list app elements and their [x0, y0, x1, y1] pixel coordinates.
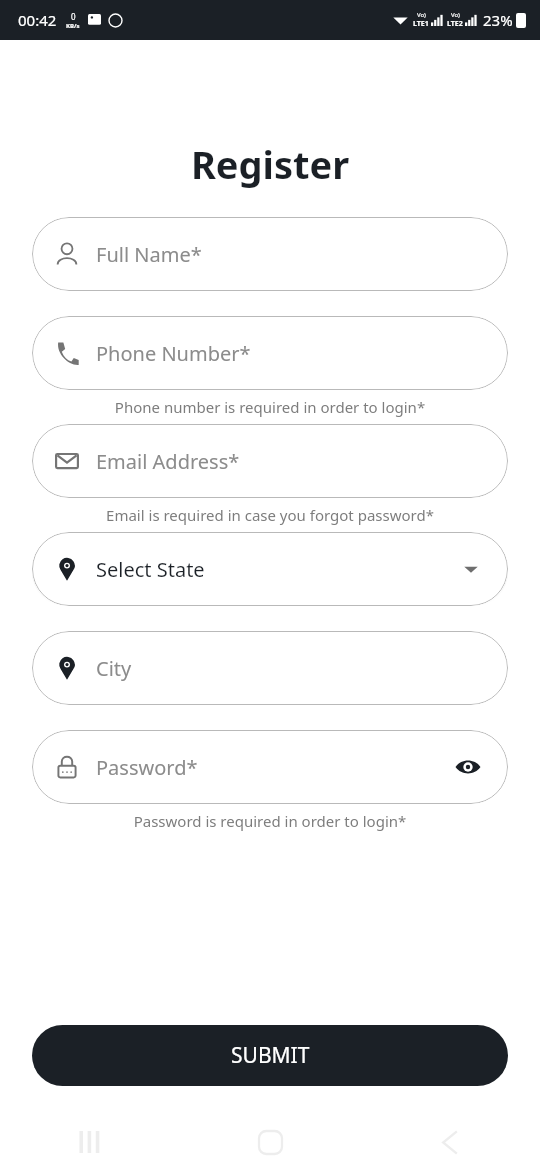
staticText: Password*: [96, 754, 450, 781]
button[interactable]: Password: [32, 730, 508, 804]
other: Phone: [54, 340, 80, 366]
staticText: Vo): [417, 11, 426, 19]
other: Location: [54, 655, 80, 681]
button[interactable]: Home: [246, 1118, 294, 1166]
staticText: Phone number is required in order to log…: [20, 397, 520, 417]
other: Email: [54, 448, 80, 474]
staticText: Full Name*: [96, 241, 486, 268]
other: Location: [54, 556, 80, 582]
button[interactable]: Phone: [32, 316, 508, 390]
button[interactable]: Location: [32, 532, 508, 606]
button[interactable]: Recents: [66, 1118, 114, 1166]
staticText: SUBMIT: [231, 1041, 310, 1070]
staticText: Select State: [96, 556, 456, 583]
staticText: Phone Number*: [96, 340, 486, 367]
staticText: LTE1: [413, 19, 429, 29]
staticText: 00:42: [18, 10, 57, 30]
other: Name: [54, 241, 80, 267]
staticText: Email Address*: [96, 448, 486, 475]
button[interactable]: Back: [426, 1118, 474, 1166]
button[interactable]: Open dropdown: [456, 554, 486, 584]
staticText: City: [96, 655, 486, 682]
staticText: 23%: [483, 10, 513, 30]
button[interactable]: Location: [32, 631, 508, 705]
staticText: Email is required in case you forgot pas…: [20, 505, 520, 525]
button[interactable]: Name: [32, 217, 508, 291]
staticText: Password is required in order to login*: [20, 811, 520, 831]
staticText: Vo): [451, 11, 460, 19]
staticText: Register: [0, 138, 540, 190]
staticText: 0: [71, 11, 76, 22]
button[interactable]: Email: [32, 424, 508, 498]
other: Password: [54, 754, 80, 780]
staticText: KB/s: [66, 22, 80, 30]
staticText: LTE2: [447, 19, 463, 29]
button[interactable]: SUBMIT: [32, 1025, 508, 1086]
button[interactable]: Show password: [450, 749, 486, 785]
